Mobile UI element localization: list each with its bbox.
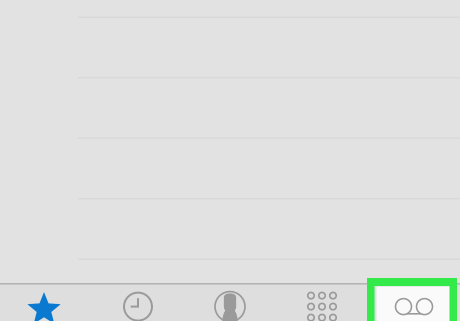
button[interactable]: Recents (92, 285, 184, 321)
button[interactable]: Favorites (0, 285, 92, 321)
button[interactable]: Voicemail (368, 285, 460, 321)
button[interactable]: Keypad (276, 285, 368, 321)
button[interactable]: Contacts (184, 285, 276, 321)
